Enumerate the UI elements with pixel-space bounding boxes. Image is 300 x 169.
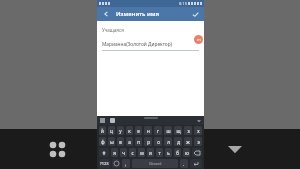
button[interactable]: н [144,126,152,135]
button[interactable]: Enter [190,159,202,168]
button[interactable]: Apps [44,136,70,162]
staticText: , [125,161,127,167]
staticText: в [119,139,122,145]
button[interactable]: , [122,159,130,168]
button[interactable]: Backspace [192,148,202,157]
staticText: с [131,150,134,156]
button[interactable]: о [154,137,162,146]
button[interactable]: ь [165,148,172,157]
staticText: ы [110,139,114,145]
button[interactable]: ф [99,137,106,146]
button[interactable]: в [117,137,124,146]
button[interactable]: ы [108,137,115,146]
staticText: ч [122,150,125,156]
button[interactable]: л [164,137,172,146]
staticText: н [147,128,150,134]
button[interactable]: ж [184,137,192,146]
button[interactable]: у [117,126,124,135]
button[interactable]: й [99,126,106,135]
button[interactable]: т [156,148,163,157]
button[interactable]: Save [190,9,200,19]
button[interactable]: с [129,148,136,157]
button[interactable]: э [194,137,202,146]
staticText: м [140,150,144,156]
staticText: ?123 [100,161,109,166]
staticText: Изменить имя [116,10,160,18]
button[interactable]: е [135,126,142,135]
button[interactable]: а [126,137,133,146]
staticText: Марианна(Золотой Директор) [102,41,173,48]
staticText: Учащаяся [102,27,124,33]
staticText: ф [101,139,105,145]
button[interactable]: р [144,137,152,146]
button[interactable]: д [174,137,182,146]
staticText: л [167,139,170,145]
staticText: й [101,128,104,134]
button[interactable]: Back [101,9,111,19]
staticText: э [197,139,200,145]
staticText: ш [166,128,171,134]
button[interactable]: к [126,126,133,135]
staticText: у [119,128,122,134]
button[interactable]: п [135,137,142,146]
button[interactable]: б [174,148,181,157]
button[interactable]: Shift [99,148,109,157]
staticText: ц [110,128,113,134]
staticText: г [157,128,159,134]
button[interactable]: и [147,148,154,157]
staticText: з [187,128,190,134]
button[interactable]: Space [132,159,178,168]
button[interactable]: ш [164,126,172,135]
staticText: я [113,150,116,156]
button[interactable]: м [138,148,145,157]
button[interactable]: з [184,126,192,135]
staticText: к [128,128,131,134]
button[interactable]: Themes [110,136,136,162]
staticText: а [128,139,131,145]
staticText: ж [186,139,190,145]
staticText: Gboard [149,161,162,166]
staticText: ю [185,150,189,156]
button[interactable]: ?123 [99,159,110,168]
staticText: т [158,150,161,156]
staticText: о [157,139,160,145]
staticText: и [149,150,152,156]
button[interactable]: Марианна(Золотой Директор) [102,41,199,51]
button[interactable]: More [196,118,201,123]
button[interactable]: . [180,159,188,168]
button[interactable]: я [111,148,118,157]
button[interactable]: х [194,126,202,135]
staticText: р [147,139,150,145]
staticText: m [197,37,201,42]
button[interactable]: Hide [222,136,248,162]
staticText: щ [176,128,181,134]
button[interactable]: ц [108,126,115,135]
staticText: 8:15 [179,1,187,6]
staticText: д [177,139,180,145]
button[interactable]: Settings [110,118,115,123]
button[interactable]: ю [183,148,190,157]
button[interactable]: Clear [194,35,203,44]
staticText: б [176,150,179,156]
button[interactable]: Emoji [112,159,120,168]
button[interactable]: щ [174,126,182,135]
staticText: . [183,161,185,167]
button[interactable]: г [154,126,162,135]
staticText: е [137,128,140,134]
staticText: х [197,128,200,134]
staticText: ь [167,150,170,156]
button[interactable]: ч [120,148,127,157]
staticText: п [137,139,140,145]
